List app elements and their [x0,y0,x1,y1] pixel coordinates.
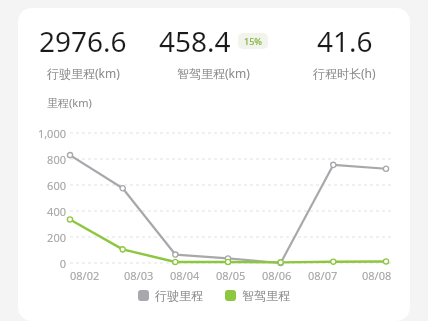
staticText: 08/03 [124,268,154,283]
button[interactable]: 458.4 [148,22,279,81]
button[interactable]: 行驶里程 [138,288,203,303]
staticText: 08/06 [262,268,292,283]
staticText: 里程(km) [47,95,92,110]
other: 智驾里程 [225,290,236,301]
staticText: 08/05 [216,268,246,283]
staticText: 08/08 [362,268,392,283]
button[interactable]: 41.6 [279,22,410,81]
staticText: 41.6 [317,22,373,60]
button[interactable]: 2976.6 [18,22,148,81]
staticText: 08/02 [70,268,100,283]
staticText: 458.4 [159,22,231,60]
staticText: 行程时长(h) [313,65,376,81]
staticText: 2976.6 [39,22,127,60]
staticText: 智驾里程 [242,288,290,303]
other: 行驶里程 [138,290,149,301]
staticText: 15% [244,35,262,47]
staticText: 400 [47,204,66,219]
staticText: 1,000 [37,126,66,141]
button[interactable]: 智驾里程 [225,288,290,303]
staticText: 08/07 [308,268,338,283]
staticText: 600 [47,178,66,193]
staticText: 行驶里程(km) [47,65,120,81]
staticText: 0 [59,256,66,271]
staticText: 200 [47,230,66,245]
staticText: 行驶里程 [155,288,203,303]
staticText: 智驾里程(km) [177,65,250,81]
staticText: 08/04 [170,268,200,283]
staticText: 800 [47,152,66,167]
